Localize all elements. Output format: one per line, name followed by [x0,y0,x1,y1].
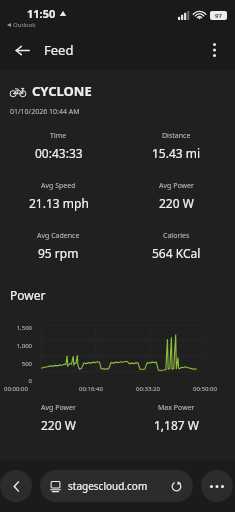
button[interactable]: Back [0,470,32,502]
button[interactable]: More options [199,35,229,65]
button[interactable]: Avg Speed [0,181,117,211]
staticText: Avg Power [159,181,194,191]
staticText: Max Power [158,403,195,413]
staticText: stagescloud.com [68,479,148,493]
button[interactable]: Avg Power [117,181,235,211]
staticText: 00:43:33 [35,145,83,161]
button[interactable]: Back [6,34,38,66]
staticText: CYCLONE [32,82,92,100]
staticText: 15.43 mi [152,145,201,161]
staticText: Distance [162,131,191,141]
staticText: Calories [163,231,190,241]
button[interactable]: Reload [170,480,183,493]
button[interactable]: Max Power [117,403,235,433]
staticText: Avg Speed [41,181,76,191]
button[interactable]: Calories [117,231,235,261]
staticText: Power [10,287,46,303]
button[interactable]: Avg Power [0,403,117,433]
staticText: Time [50,131,67,141]
staticText: 00:16:40 [79,385,103,393]
staticText: 95 rpm [38,245,79,261]
staticText: Avg Cadence [37,231,80,241]
staticText: 00:50:00 [193,385,217,393]
staticText: Feed [44,41,74,59]
staticText: Avg Power [41,403,76,413]
staticText: 500 [21,360,32,368]
button[interactable]: Distance [117,131,235,161]
staticText: 00:00:00 [4,385,28,393]
staticText: 220 W [159,195,194,211]
button[interactable]: More options [201,470,233,502]
staticText: 0 [28,377,32,385]
staticText: 21.13 mph [29,195,89,211]
staticText: 1,500 [16,324,32,332]
staticText: 220 W [41,417,76,433]
staticText: 01/10/2026 10:44 AM [10,107,80,117]
staticText: 00:33:20 [136,385,160,393]
staticText: 97 [215,12,222,20]
staticText: Outlook [13,21,36,29]
staticText: 11:50 [27,6,56,21]
button[interactable]: Time [0,131,117,161]
staticText: 1,187 W [154,417,199,433]
staticText: 564 KCal [152,245,201,261]
button[interactable]: Avg Cadence [0,231,117,261]
staticText: 1,000 [16,342,32,350]
button[interactable]: stagescloud.com [40,470,193,502]
